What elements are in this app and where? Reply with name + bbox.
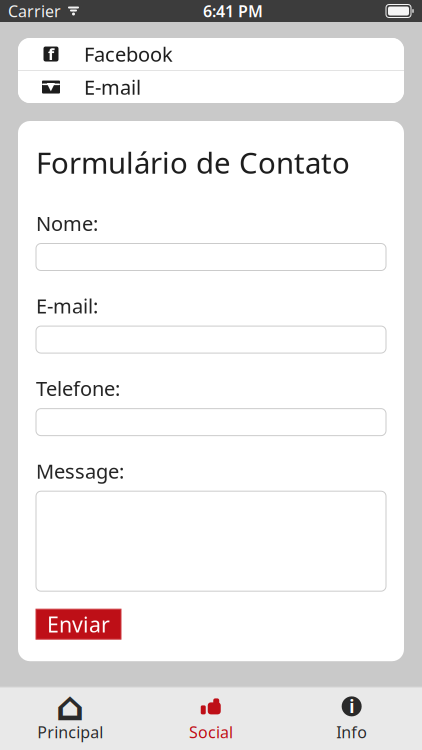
staticText: E-mail: — [36, 292, 98, 319]
button[interactable]: ⌂ — [0, 687, 141, 750]
staticText: i — [349, 695, 354, 718]
staticText: Carrier — [8, 0, 61, 22]
staticText: f — [48, 43, 54, 65]
button[interactable]: i — [281, 687, 422, 750]
staticText: ⌂ — [56, 684, 85, 729]
staticText: Telefone: — [36, 375, 120, 402]
button[interactable]: ▾ — [18, 71, 404, 103]
staticText: Nome: — [36, 210, 98, 237]
staticText: Info — [336, 721, 367, 743]
staticText: Formulário de Contato — [36, 143, 350, 182]
staticText: Enviar — [47, 610, 110, 638]
staticText: Message: — [36, 458, 124, 484]
staticText: Social — [189, 721, 233, 743]
staticText: 6:41 PM — [203, 0, 263, 22]
staticText: E-mail — [84, 74, 141, 100]
button[interactable]: f — [18, 38, 404, 70]
staticText: Facebook — [84, 41, 173, 67]
staticText: ▾ — [46, 76, 55, 95]
staticText: Principal — [37, 721, 103, 743]
button[interactable]: Enviar — [36, 609, 121, 639]
button[interactable]: Social — [141, 687, 281, 750]
